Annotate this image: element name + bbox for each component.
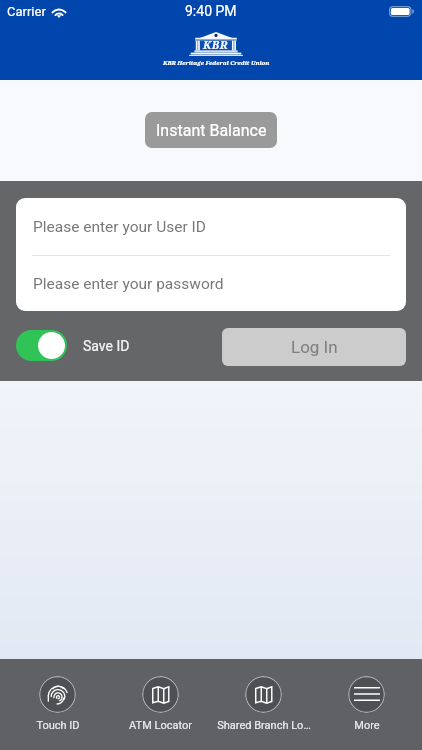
- button[interactable]: Please enter your User ID: [16, 198, 406, 255]
- button[interactable]: ATM Locator: [109, 659, 212, 750]
- button[interactable]: Save ID: [16, 330, 130, 361]
- staticText: Instant Balance: [156, 121, 267, 140]
- staticText: ATM Locator: [129, 719, 192, 732]
- staticText: More: [354, 719, 380, 732]
- staticText: Please enter your password: [33, 275, 224, 293]
- staticText: Please enter your User ID: [33, 218, 206, 236]
- staticText: Save ID: [83, 338, 130, 354]
- staticText: 9:40 PM: [185, 3, 237, 19]
- staticText: Touch ID: [36, 719, 80, 732]
- button[interactable]: Instant Balance: [145, 112, 277, 148]
- button[interactable]: Touch ID: [6, 659, 109, 750]
- button[interactable]: Log In: [222, 328, 406, 366]
- staticText: Log In: [291, 337, 338, 357]
- staticText: KBR Heritage Federal Credit Union: [163, 59, 270, 67]
- staticText: KBR: [203, 37, 229, 52]
- button[interactable]: More: [315, 659, 418, 750]
- button[interactable]: Shared Branch Locator: [212, 659, 315, 750]
- staticText: Carrier: [7, 4, 46, 19]
- button[interactable]: Please enter your password: [16, 256, 406, 311]
- staticText: Shared Branch Lo…: [217, 719, 311, 732]
